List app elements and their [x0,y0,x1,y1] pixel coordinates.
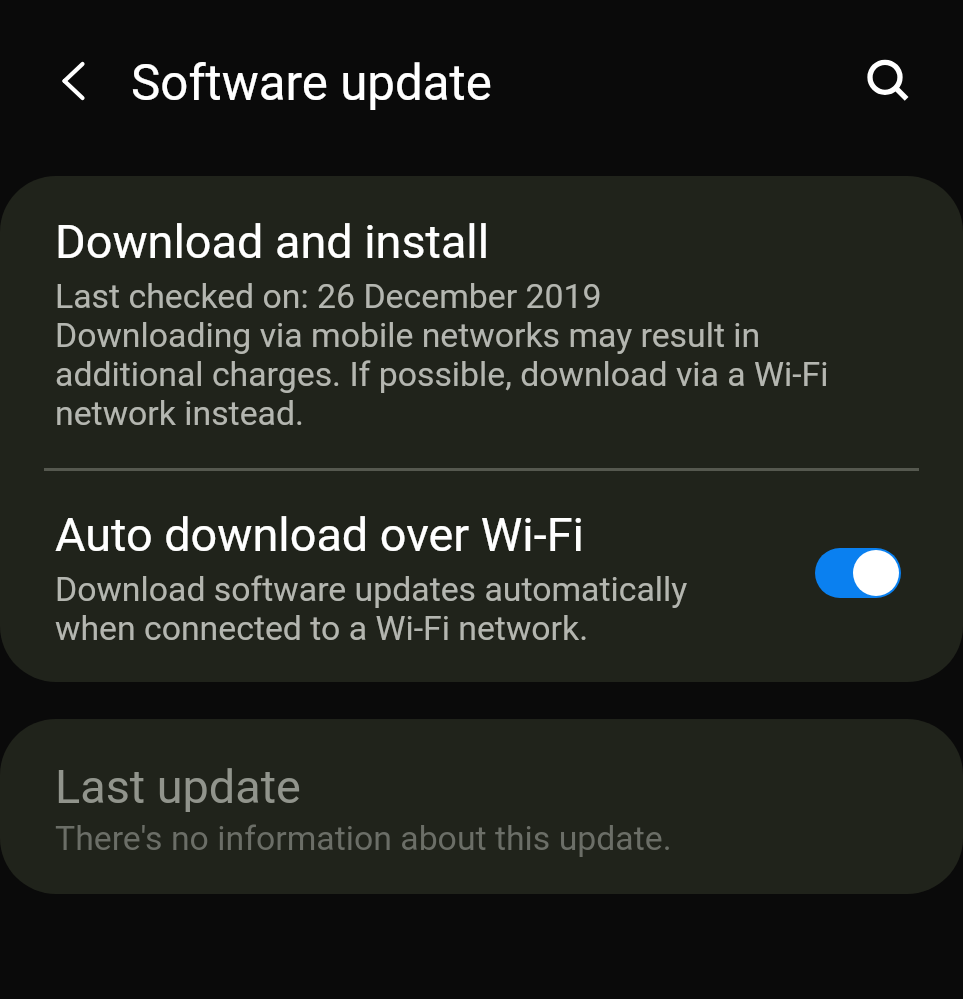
button[interactable]: Navigate up [34,47,102,115]
staticText: Auto download over Wi-Fi [55,508,584,563]
button[interactable]: Search [851,44,919,112]
button[interactable]: Auto download over Wi-Fi [815,548,901,598]
staticText: Download software updates automatically … [55,570,688,648]
button[interactable]: Last update [0,719,963,894]
staticText: Download and install [55,215,490,270]
button[interactable]: Auto download over Wi-Fi [0,469,963,681]
staticText: Software update [131,54,492,112]
button[interactable]: Download and install [0,176,963,467]
staticText: Last update [55,760,301,815]
staticText: There's no information about this update… [55,819,672,858]
staticText: Last checked on: 26 December 2019 Downlo… [55,277,829,433]
